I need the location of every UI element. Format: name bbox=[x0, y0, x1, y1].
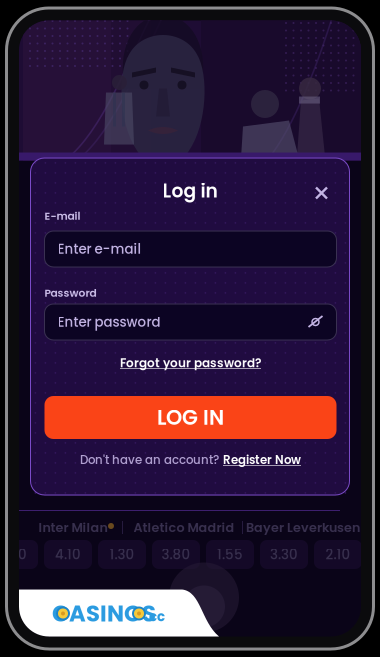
button[interactable]: Don't have an account? bbox=[44, 452, 336, 468]
staticText: Forgot your password? bbox=[120, 355, 261, 371]
button[interactable]: Close bbox=[307, 179, 335, 207]
staticText: 1.30 bbox=[109, 545, 134, 564]
staticText: Don't have an account? bbox=[80, 452, 219, 468]
staticText: 3.30 bbox=[270, 545, 298, 564]
staticText: Register Now bbox=[223, 452, 301, 468]
staticText: 4.10 bbox=[55, 545, 81, 564]
button[interactable]: LOG IN bbox=[44, 396, 336, 439]
staticText: Password bbox=[44, 285, 96, 300]
staticText: 3.80 bbox=[161, 545, 190, 564]
staticText: E-mail bbox=[44, 208, 80, 223]
staticText: 2.10 bbox=[325, 545, 350, 564]
staticText: LOG IN bbox=[157, 403, 224, 432]
staticText: Enter password bbox=[57, 313, 160, 331]
button[interactable]: Forgot your password? bbox=[44, 355, 336, 371]
staticText: Atletico Madrid bbox=[133, 519, 234, 536]
staticText: Inter Milan bbox=[38, 519, 107, 536]
staticText: Bayer Leverkusen bbox=[246, 519, 360, 536]
button[interactable]: Show password bbox=[302, 304, 328, 340]
staticText: Enter e-mail bbox=[57, 240, 141, 258]
staticText: 1.50 bbox=[1, 545, 27, 564]
staticText: .cc bbox=[145, 607, 165, 626]
staticText: 1.55 bbox=[217, 545, 243, 564]
staticText: CASINOS bbox=[52, 598, 156, 629]
staticText: Log in bbox=[162, 178, 217, 204]
